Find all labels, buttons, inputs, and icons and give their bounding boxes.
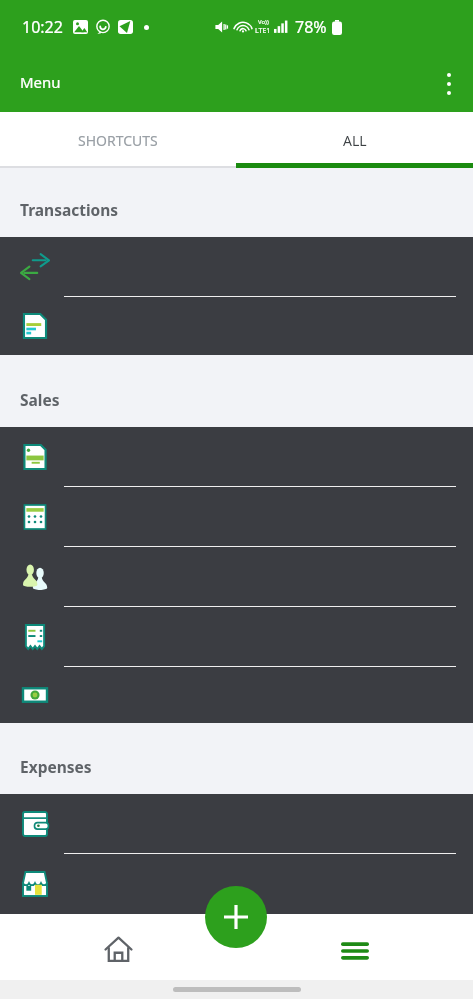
staticText: Vo))	[258, 18, 269, 26]
button[interactable]	[0, 794, 473, 853]
staticText: Sales	[20, 389, 60, 410]
button[interactable]	[0, 607, 473, 666]
staticText: SHORTCUTS	[78, 131, 158, 150]
button[interactable]	[0, 667, 473, 723]
staticText: ALL	[343, 131, 367, 150]
staticText: Expenses	[20, 756, 92, 777]
button[interactable]	[0, 297, 473, 355]
button[interactable]: Home	[0, 914, 236, 983]
button[interactable]: SHORTCUTS	[0, 112, 236, 168]
button[interactable]	[0, 487, 473, 546]
button[interactable]: Menu	[236, 914, 473, 983]
button[interactable]	[0, 237, 473, 296]
button[interactable]	[0, 427, 473, 486]
button[interactable]	[0, 547, 473, 606]
staticText: Transactions	[20, 199, 119, 220]
staticText: LTE1	[255, 26, 271, 36]
button[interactable]	[0, 854, 473, 913]
staticText: 78%	[295, 16, 327, 38]
staticText: 10:22	[22, 16, 63, 38]
button[interactable]: More options	[425, 60, 473, 108]
button[interactable]: Add	[205, 886, 267, 948]
button[interactable]: ALL	[236, 112, 473, 168]
staticText: Menu	[20, 72, 61, 92]
